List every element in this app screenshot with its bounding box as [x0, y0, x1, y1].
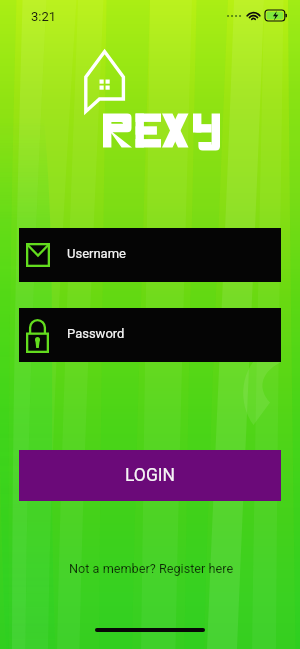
staticText: Not a member? Register here [69, 561, 234, 576]
button[interactable]: LOGIN [19, 450, 281, 501]
staticText: Password [67, 326, 125, 341]
button[interactable]: Not a member? Register here [61, 556, 242, 581]
staticText: 3:21 [31, 9, 57, 24]
staticText: Username [67, 246, 126, 261]
button[interactable]: Username [19, 228, 281, 282]
button[interactable]: Password [19, 308, 281, 362]
staticText: LOGIN [125, 465, 176, 486]
